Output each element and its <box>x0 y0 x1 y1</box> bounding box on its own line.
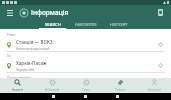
button[interactable]: Swap <box>156 61 165 70</box>
staticText: Харків обл. <box>16 67 36 72</box>
staticText: HISTORY <box>110 22 128 28</box>
staticText: Schedule <box>45 87 60 92</box>
button[interactable]: Schedule <box>35 78 69 93</box>
staticText: To <box>7 53 11 58</box>
staticText: Trips <box>82 87 90 92</box>
staticText: Account <box>148 87 161 92</box>
button[interactable]: Харків-Пасаж <box>0 59 171 72</box>
staticText: From <box>7 32 16 37</box>
button[interactable]: SEARCH <box>36 20 69 29</box>
staticText: Search <box>12 87 23 92</box>
button[interactable]: Trips <box>69 78 103 93</box>
button[interactable]: Locate <box>156 40 165 49</box>
button[interactable]: Tickets <box>103 78 137 93</box>
staticText: Харків-Пасаж <box>16 60 47 66</box>
staticText: Київ пасажирський <box>16 46 50 51</box>
button[interactable]: HISTORY <box>102 20 135 29</box>
button[interactable]: FAVORITES <box>69 20 102 29</box>
staticText: Інформація <box>31 8 69 17</box>
button[interactable]: Menu <box>5 8 15 18</box>
staticText: SEARCH <box>45 22 61 28</box>
button[interactable]: Account <box>137 78 171 93</box>
staticText: Станція — ВОКЗ <box>16 39 53 45</box>
button[interactable]: Tickets <box>155 7 166 18</box>
button[interactable]: Станція — ВОКЗ <box>0 38 171 51</box>
staticText: Tickets <box>115 87 126 92</box>
staticText: Departure date <box>7 75 32 78</box>
staticText: FAVORITES <box>75 22 97 28</box>
button[interactable]: Search <box>0 78 35 93</box>
